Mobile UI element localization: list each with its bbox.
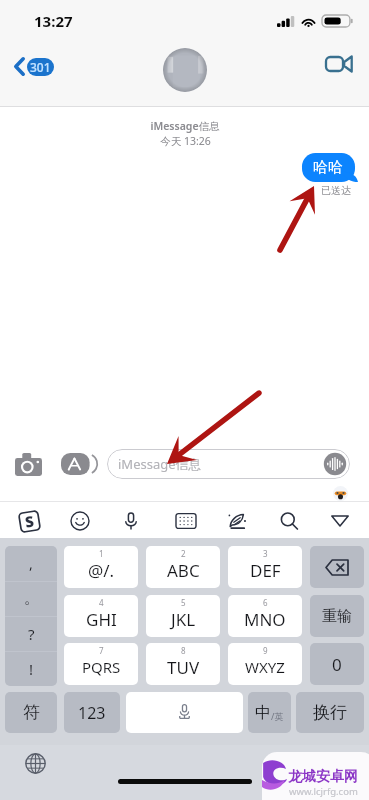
staticText: , <box>29 554 33 573</box>
staticText: 123 <box>78 702 106 724</box>
staticText: 1 <box>99 548 104 559</box>
button[interactable]: Handwriting <box>220 505 254 537</box>
button[interactable]: Contact avatar <box>163 48 207 92</box>
button[interactable]: Camera <box>15 453 42 476</box>
button[interactable]: App Store <box>61 453 95 475</box>
staticText: 符 <box>23 702 40 723</box>
staticText: 龙城安卓网 <box>288 768 358 786</box>
staticText: GHI <box>86 608 117 631</box>
staticText: 换行 <box>313 702 347 723</box>
button[interactable]: Sogou input method <box>12 505 46 537</box>
staticText: 今天 13:26 <box>160 134 211 148</box>
button[interactable]: 。 <box>5 581 57 616</box>
staticText: 已送达 <box>321 184 351 197</box>
staticText: 重输 <box>322 607 352 626</box>
button[interactable]: 6 <box>228 595 302 637</box>
button[interactable]: 8 <box>146 643 220 685</box>
staticText: DEF <box>250 559 281 582</box>
button[interactable]: iMessage信息 <box>107 449 350 479</box>
button[interactable]: Search <box>272 505 306 537</box>
staticText: ! <box>29 659 34 679</box>
staticText: 5 <box>181 597 186 608</box>
staticText: JKL <box>171 608 196 631</box>
staticText: ABC <box>167 559 200 582</box>
staticText: 7 <box>99 645 104 656</box>
button[interactable]: ? <box>5 616 57 651</box>
button[interactable]: 3 <box>228 546 302 588</box>
button[interactable]: 123 <box>64 692 120 733</box>
staticText: 0 <box>332 653 342 676</box>
button[interactable]: Back to conversation list <box>9 52 59 81</box>
button[interactable]: Switch keyboard language <box>25 753 46 774</box>
staticText: /英 <box>271 710 284 722</box>
staticText: WXYZ <box>245 657 285 677</box>
button[interactable]: Backspace <box>310 546 364 588</box>
button[interactable]: , <box>5 546 57 581</box>
staticText: 301 <box>30 59 51 75</box>
button[interactable]: Voice input <box>114 505 148 537</box>
staticText: 8 <box>181 645 186 656</box>
staticText: PQRS <box>82 657 121 677</box>
button[interactable]: 5 <box>146 595 220 637</box>
button[interactable]: 哈哈 <box>302 153 358 182</box>
button[interactable]: 4 <box>64 595 138 637</box>
button[interactable]: 2 <box>146 546 220 588</box>
staticText: 。 <box>24 589 39 608</box>
button[interactable]: 9 <box>228 643 302 685</box>
staticText: S <box>23 510 35 531</box>
staticText: iMessage信息 <box>118 455 202 473</box>
staticText: 9 <box>263 645 268 656</box>
button[interactable]: ! <box>5 651 57 686</box>
button[interactable]: 换行 <box>296 692 364 733</box>
button[interactable]: Hide keyboard <box>323 505 357 537</box>
button[interactable]: Emoji <box>63 505 97 537</box>
staticText: 13:27 <box>34 11 73 31</box>
staticText: 2 <box>181 548 186 559</box>
staticText: MNO <box>244 608 286 631</box>
staticText: 中 <box>255 703 271 723</box>
button[interactable]: 1 <box>64 546 138 588</box>
button[interactable]: 7 <box>64 643 138 685</box>
button[interactable]: FaceTime video call <box>322 52 352 76</box>
button[interactable]: Record audio message <box>321 450 349 478</box>
staticText: www.lcjrfg.com <box>289 785 358 798</box>
button[interactable]: 0 <box>310 643 364 685</box>
staticText: 3 <box>263 548 268 559</box>
button[interactable]: 符 <box>5 692 57 733</box>
staticText: ? <box>28 624 35 644</box>
button[interactable]: Voice input <box>126 692 243 733</box>
staticText: 哈哈 <box>313 158 343 177</box>
staticText: @/. <box>88 559 115 582</box>
staticText: 6 <box>263 597 268 608</box>
staticText: iMessage信息 <box>150 119 220 133</box>
button[interactable]: Keyboard layout <box>169 505 203 537</box>
button[interactable]: Chinese English toggle <box>248 692 291 733</box>
button[interactable]: 重输 <box>310 595 364 637</box>
staticText: TUV <box>167 656 200 679</box>
staticText: 4 <box>99 597 104 608</box>
